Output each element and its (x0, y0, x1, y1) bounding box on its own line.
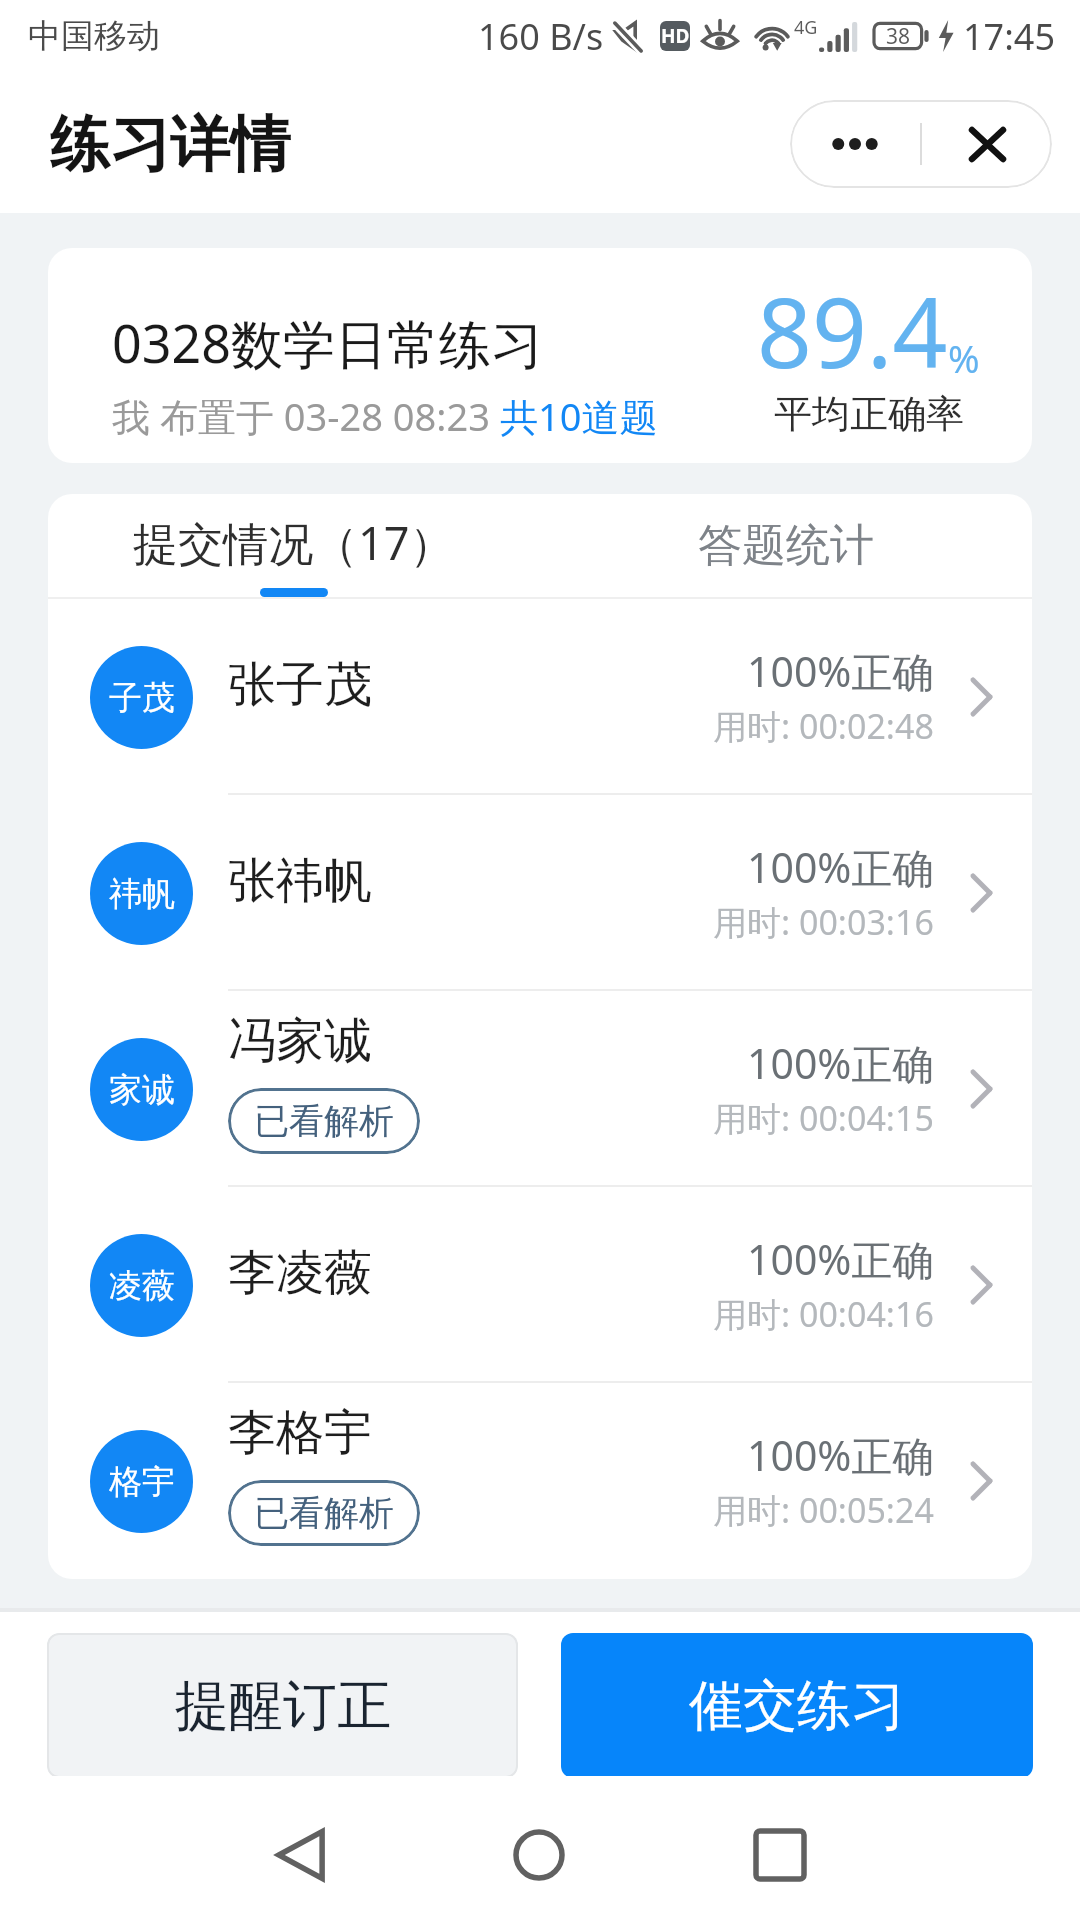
staticText: 100%正确 (747, 643, 934, 699)
button[interactable]: 格宇 (48, 1383, 1032, 1579)
button[interactable]: 家诚 (48, 991, 1032, 1187)
button[interactable]: More options (790, 100, 920, 188)
staticText: 160 B/s (478, 12, 604, 61)
staticText: 冯家诚 (228, 1011, 372, 1071)
staticText: 100%正确 (747, 839, 934, 895)
staticText: 提交情况（17） (133, 512, 455, 573)
staticText: 张祎帆 (228, 851, 372, 911)
staticText: 共10道题 (500, 390, 658, 442)
button[interactable]: 凌薇 (48, 1187, 1032, 1383)
button[interactable]: 祎帆 (48, 795, 1032, 991)
staticText: 用时: 00:02:48 (713, 703, 934, 749)
staticText: 4G (794, 15, 818, 40)
staticText: 用时: 00:03:16 (713, 899, 934, 945)
staticText: 我 布置于 03-28 08:23 (112, 390, 500, 442)
button[interactable]: 提交情况（17） (48, 494, 540, 597)
button[interactable]: Close (922, 100, 1052, 188)
staticText: 李格宇 (228, 1403, 372, 1463)
staticText: 100%正确 (747, 1231, 934, 1287)
staticText: 答题统计 (698, 518, 874, 573)
staticText: 已看解析 (254, 1491, 394, 1535)
staticText: % (948, 332, 980, 384)
button[interactable]: 催交练习 (561, 1633, 1033, 1778)
staticText: 提醒订正 (175, 1672, 391, 1740)
staticText: 38 (886, 22, 911, 51)
staticText: 催交练习 (689, 1672, 905, 1740)
staticText: 李凌薇 (228, 1243, 372, 1303)
staticText: 子茂 (109, 677, 175, 719)
button[interactable]: Home (479, 1795, 599, 1915)
button[interactable]: 0328数学日常练习 (48, 248, 1032, 463)
staticText: 练习详情 (50, 107, 290, 183)
button[interactable]: Recent apps (720, 1795, 840, 1915)
button[interactable]: 子茂 (48, 599, 1032, 795)
staticText: 平均正确率 (774, 390, 964, 438)
staticText: 凌薇 (109, 1265, 175, 1307)
button[interactable]: 提醒订正 (47, 1633, 518, 1778)
staticText: 家诚 (109, 1069, 175, 1111)
button[interactable]: 答题统计 (540, 494, 1032, 597)
staticText: 格宇 (109, 1461, 175, 1503)
staticText: 100%正确 (747, 1035, 934, 1091)
staticText: 已看解析 (254, 1099, 394, 1143)
staticText: 0328数学日常练习 (112, 307, 543, 378)
staticText: 用时: 00:05:24 (713, 1487, 934, 1533)
staticText: 中国移动 (28, 15, 160, 57)
staticText: 100%正确 (747, 1427, 934, 1483)
staticText: 祎帆 (109, 873, 175, 915)
staticText: 89.4 (757, 265, 948, 396)
staticText: 张子茂 (228, 655, 372, 715)
staticText: HD (661, 23, 690, 49)
button[interactable]: Back (240, 1795, 360, 1915)
staticText: 17:45 (963, 12, 1056, 61)
staticText: 用时: 00:04:16 (713, 1291, 934, 1337)
staticText: 用时: 00:04:15 (713, 1095, 934, 1141)
